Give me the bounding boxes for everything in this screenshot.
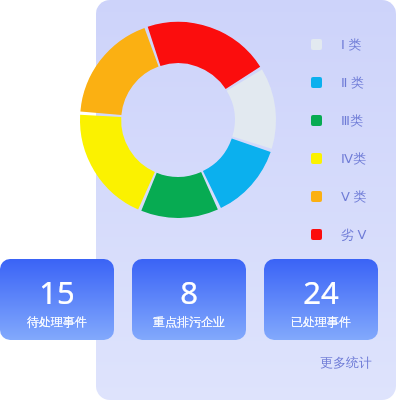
- button[interactable]: 24: [264, 259, 378, 340]
- button[interactable]: 更多统计: [318, 352, 374, 372]
- staticText: 重点排污企业: [153, 314, 225, 329]
- staticText: 15: [39, 271, 75, 313]
- button[interactable]: Ⅳ类: [311, 139, 366, 177]
- button[interactable]: Ⅴ 类: [311, 177, 367, 215]
- staticText: Ⅳ类: [341, 150, 366, 166]
- staticText: Ⅲ类: [341, 112, 363, 128]
- button[interactable]: Ⅰ 类: [311, 25, 362, 63]
- staticText: Ⅴ 类: [341, 187, 367, 205]
- button[interactable]: Ⅱ 类: [311, 63, 364, 101]
- staticText: 已处理事件: [291, 314, 351, 329]
- staticText: Ⅰ 类: [341, 35, 362, 53]
- other: Water quality distribution chart: [80, 22, 276, 218]
- button[interactable]: Ⅲ类: [311, 101, 363, 139]
- button[interactable]: 15: [0, 259, 114, 340]
- button[interactable]: 8: [132, 259, 246, 340]
- staticText: 8: [180, 271, 198, 313]
- staticText: 更多统计: [320, 354, 372, 370]
- staticText: Ⅱ 类: [341, 73, 364, 91]
- button[interactable]: 劣 Ⅴ: [311, 215, 367, 253]
- staticText: 24: [303, 271, 339, 313]
- staticText: 待处理事件: [27, 314, 87, 329]
- staticText: 劣 Ⅴ: [341, 225, 367, 243]
